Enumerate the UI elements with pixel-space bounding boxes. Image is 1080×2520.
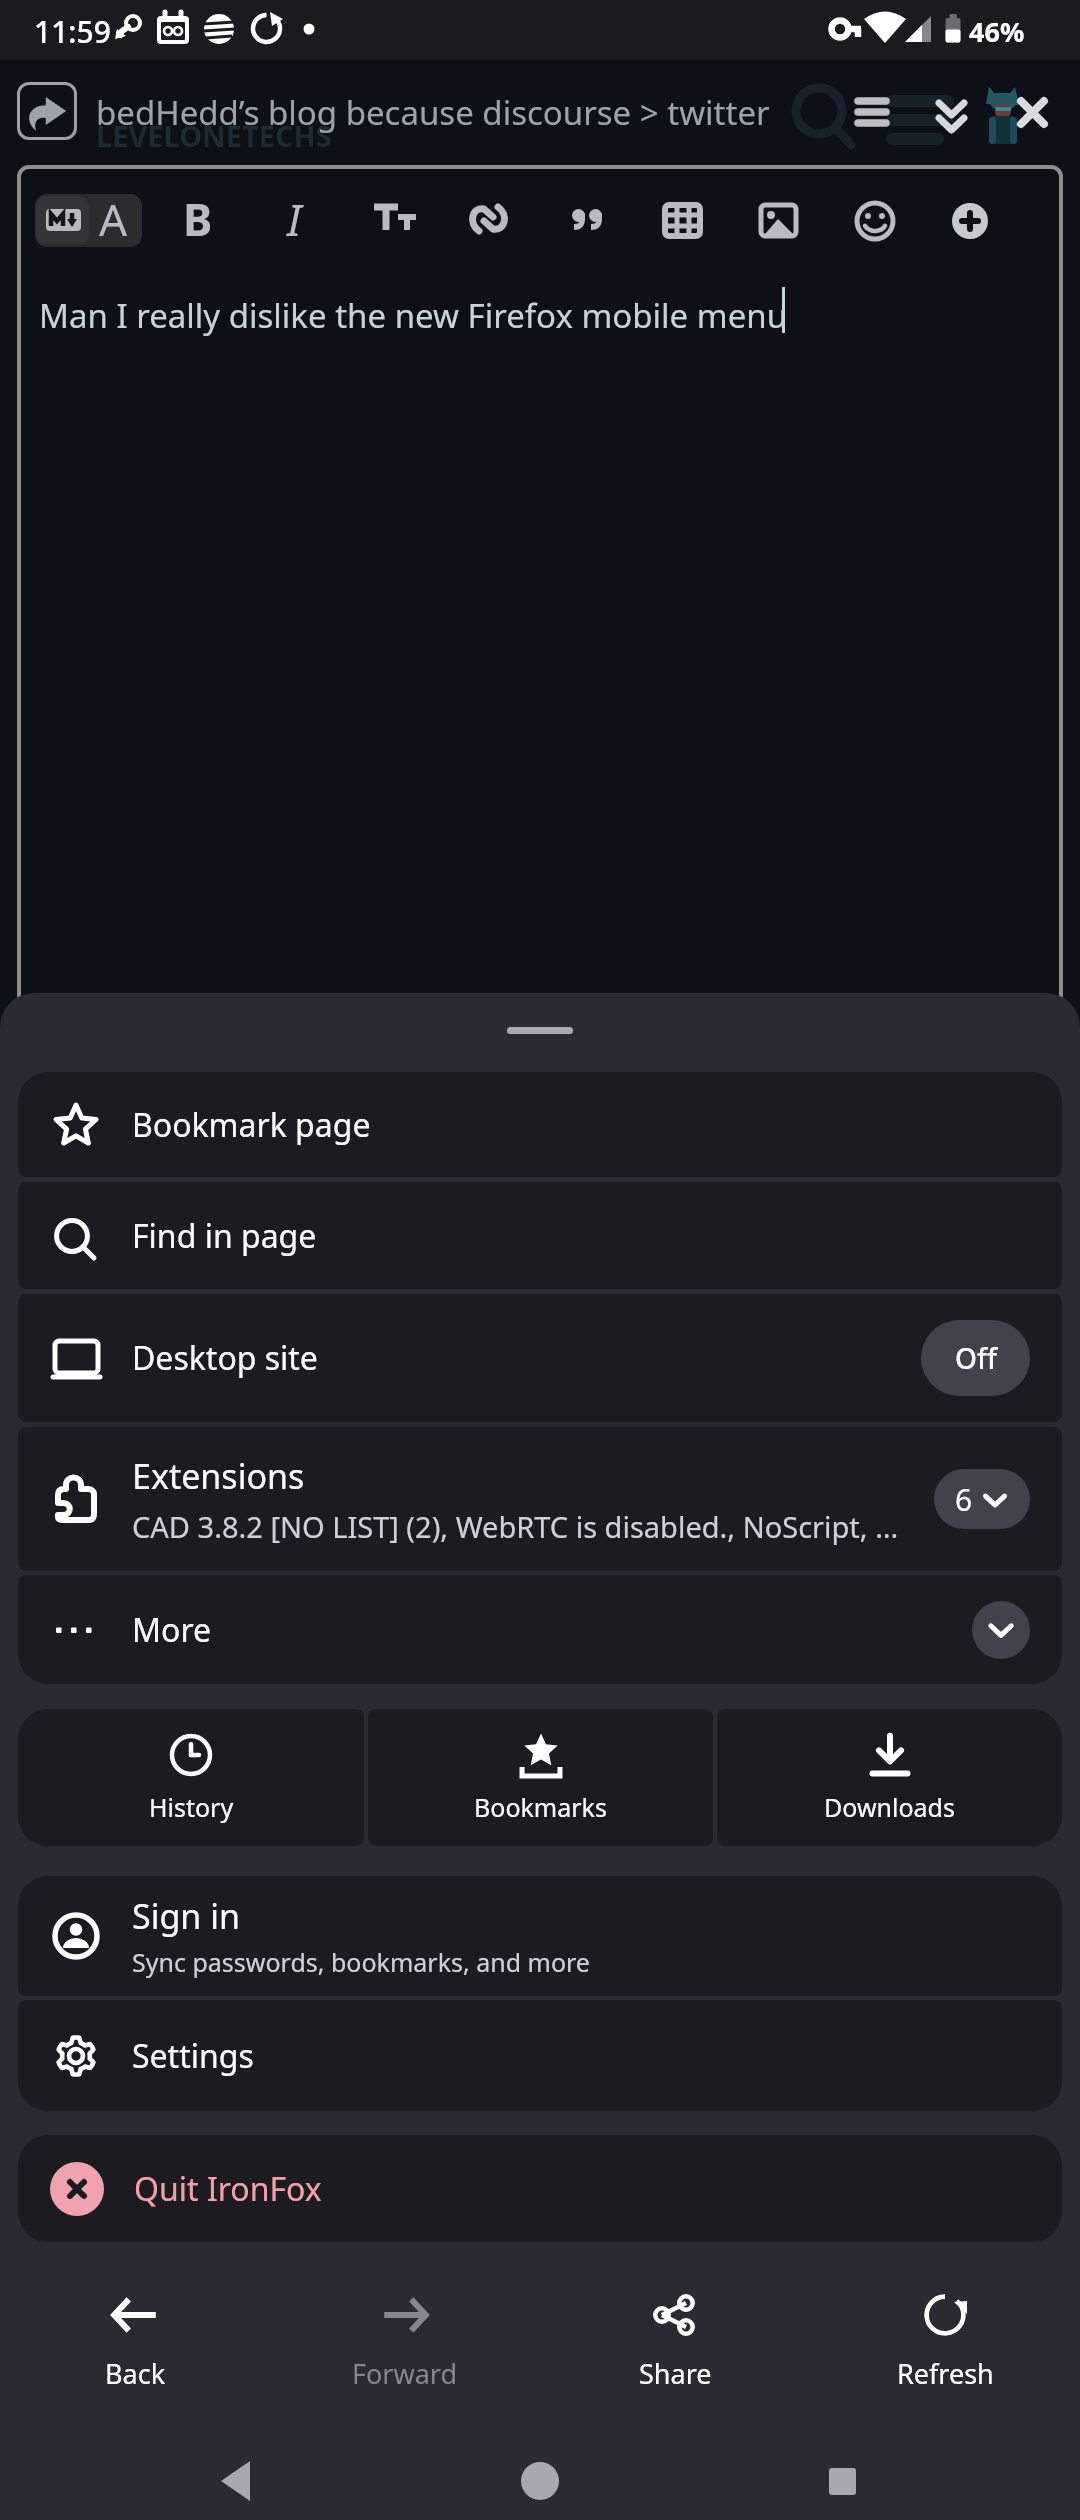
staticText: LEVELONETECHS bbox=[96, 116, 332, 155]
button[interactable]: Bookmarks bbox=[368, 1709, 713, 1846]
button[interactable]: Quit IronFox bbox=[18, 2135, 1062, 2242]
staticText: Desktop site bbox=[132, 1336, 318, 1380]
staticText: More bbox=[132, 1608, 212, 1652]
button[interactable]: History bbox=[18, 1709, 364, 1846]
button[interactable]: Refresh bbox=[810, 2276, 1080, 2404]
button[interactable]: Markdown mode bbox=[35, 194, 142, 247]
staticText: Bookmark page bbox=[132, 1103, 371, 1147]
staticText: Settings bbox=[132, 2034, 254, 2078]
button[interactable]: Menu bbox=[850, 86, 896, 132]
button[interactable]: Expand more bbox=[972, 1601, 1030, 1659]
staticText: Bookmarks bbox=[474, 1790, 607, 1824]
button[interactable]: Desktop site bbox=[18, 1294, 1062, 1422]
button[interactable]: Off bbox=[921, 1320, 1030, 1396]
button[interactable]: Forward bbox=[270, 2276, 540, 2404]
staticText: Sync passwords, bookmarks, and more bbox=[132, 1945, 590, 1979]
button[interactable]: B bbox=[167, 173, 229, 265]
button[interactable]: I bbox=[263, 173, 325, 265]
staticText: Share bbox=[639, 2355, 712, 2392]
staticText: 46% bbox=[969, 13, 1025, 50]
button[interactable]: Extensions bbox=[18, 1427, 1062, 1571]
button[interactable]: Back bbox=[0, 2276, 270, 2404]
staticText: History bbox=[149, 1790, 234, 1824]
staticText: Back bbox=[105, 2355, 166, 2392]
button[interactable]: Sign in bbox=[18, 1876, 1062, 1996]
staticText: I bbox=[287, 189, 302, 249]
button[interactable]: Close bbox=[1016, 86, 1070, 140]
button[interactable]: Share bbox=[17, 82, 77, 140]
button[interactable]: Collapse bbox=[930, 86, 974, 130]
staticText: A bbox=[99, 189, 128, 249]
staticText: Off bbox=[955, 1339, 997, 1377]
staticText: Quit IronFox bbox=[134, 2167, 322, 2211]
staticText: Find in page bbox=[132, 1214, 317, 1258]
staticText: B bbox=[183, 189, 213, 249]
button[interactable]: A bbox=[82, 173, 144, 265]
button[interactable]: Settings bbox=[18, 2000, 1062, 2111]
button[interactable]: Bookmark page bbox=[18, 1072, 1062, 1177]
staticText: bedHedd’s blog because discourse > twitt… bbox=[96, 90, 770, 135]
staticText: 6 bbox=[955, 1479, 973, 1520]
staticText: Forward bbox=[352, 2355, 458, 2392]
staticText: Man I really dislike the new Firefox mob… bbox=[39, 293, 788, 338]
staticText: CAD 3.8.2 [NO LIST] (2), WebRTC is disab… bbox=[132, 1507, 899, 1546]
button[interactable]: More bbox=[18, 1575, 1062, 1684]
button[interactable]: 6 extensions, expand bbox=[934, 1469, 1030, 1529]
button[interactable]: Share bbox=[540, 2276, 810, 2404]
staticText: Refresh bbox=[897, 2355, 994, 2392]
button[interactable]: Account bbox=[980, 80, 1030, 130]
button[interactable]: Search bbox=[794, 86, 846, 138]
button[interactable]: Downloads bbox=[717, 1709, 1062, 1846]
staticText: Sign in bbox=[132, 1893, 240, 1939]
button[interactable]: Find in page bbox=[18, 1182, 1062, 1289]
staticText: Downloads bbox=[824, 1790, 955, 1824]
staticText: 11:59 bbox=[34, 11, 111, 52]
staticText: Extensions bbox=[132, 1453, 305, 1499]
